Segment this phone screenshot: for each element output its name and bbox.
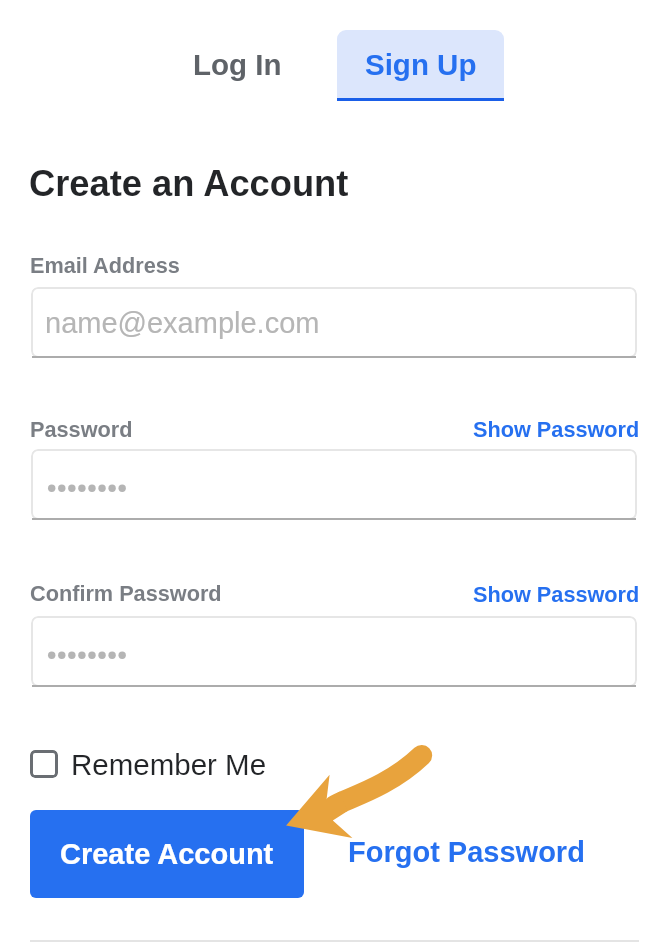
button[interactable]: name@example.com — [31, 287, 637, 358]
staticText: Password — [30, 417, 133, 441]
button[interactable] — [31, 449, 637, 520]
staticText: Confirm Password — [30, 581, 222, 605]
staticText: Forgot Password — [348, 836, 585, 868]
staticText: Remember Me — [71, 748, 267, 781]
staticText: Show Password — [473, 582, 640, 606]
button[interactable]: Show Password — [473, 582, 640, 606]
button[interactable]: Sign Up — [337, 30, 504, 101]
staticText: Create an Account — [29, 163, 349, 204]
button[interactable]: Show Password — [473, 417, 640, 441]
button[interactable] — [31, 616, 637, 687]
button[interactable]: Remember Me checkbox — [30, 750, 58, 778]
staticText: Sign Up — [365, 48, 477, 81]
staticText: Email Address — [30, 253, 180, 277]
staticText: Show Password — [473, 417, 640, 441]
button[interactable]: Log In — [157, 30, 317, 98]
button[interactable]: Forgot Password — [348, 836, 585, 868]
button[interactable]: Remember Me — [71, 748, 267, 781]
button[interactable]: Create Account — [30, 810, 304, 898]
staticText: name@example.com — [45, 307, 320, 339]
staticText: Log In — [193, 48, 282, 81]
staticText: Create Account — [60, 838, 274, 870]
